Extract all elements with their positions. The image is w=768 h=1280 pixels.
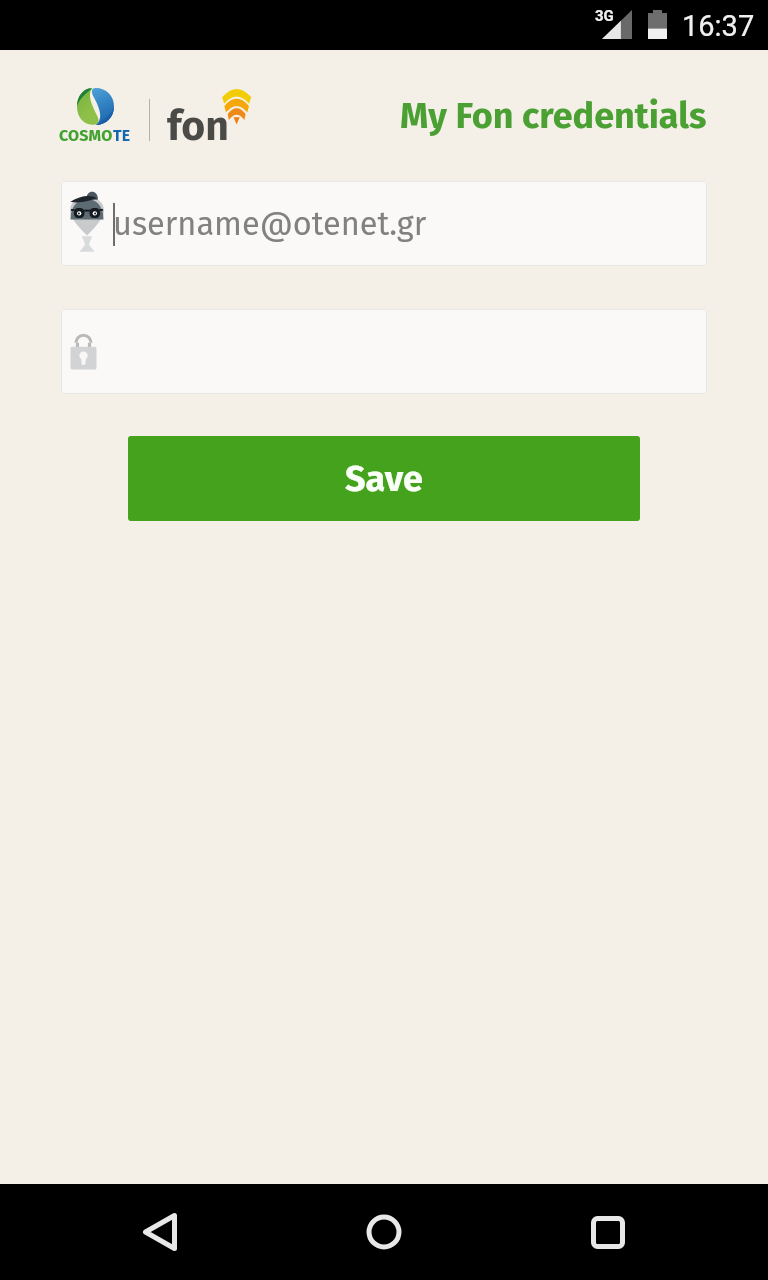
button[interactable]: Recent apps (572, 1196, 644, 1268)
button[interactable]: Back (124, 1196, 196, 1268)
staticText: TE (113, 126, 131, 145)
button[interactable]: username@otenet.gr (61, 181, 707, 266)
button[interactable]: Save (128, 436, 640, 521)
button[interactable] (61, 309, 707, 394)
staticText: username@otenet.gr (113, 205, 427, 244)
staticText: 3G (595, 7, 614, 25)
button[interactable]: Home (348, 1196, 420, 1268)
staticText: COSMO (59, 126, 113, 145)
staticText: fon (167, 102, 229, 151)
staticText: Save (345, 457, 423, 500)
staticText: My Fon credentials (400, 94, 707, 137)
staticText: 16:37 (682, 9, 755, 43)
